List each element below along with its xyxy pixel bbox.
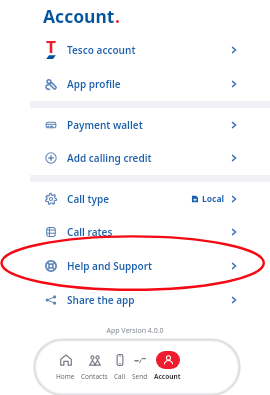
button[interactable]: Call bbox=[111, 351, 129, 381]
button[interactable]: Call rates bbox=[0, 215, 270, 249]
staticText: Send bbox=[132, 372, 148, 381]
button[interactable]: Home bbox=[53, 351, 78, 381]
staticText: Account bbox=[154, 372, 181, 381]
button[interactable]: Payment wallet bbox=[0, 108, 270, 141]
button[interactable]: Share the app bbox=[0, 283, 270, 317]
button[interactable]: Account bbox=[151, 351, 184, 381]
staticText: Call type bbox=[67, 192, 110, 206]
button[interactable]: Help and Support bbox=[0, 249, 270, 283]
button[interactable]: App profile bbox=[0, 67, 270, 101]
staticText: Call bbox=[114, 372, 126, 381]
button[interactable]: Call type bbox=[0, 182, 270, 215]
staticText: Payment wallet bbox=[67, 118, 143, 132]
button[interactable]: Add calling credit bbox=[0, 141, 270, 175]
button[interactable]: Send bbox=[129, 351, 151, 381]
staticText: Contacts bbox=[81, 372, 108, 381]
staticText: Call rates bbox=[67, 225, 113, 239]
staticText: Local bbox=[202, 193, 225, 205]
staticText: Share the app bbox=[67, 293, 135, 307]
button[interactable]: Tesco account bbox=[0, 32, 270, 67]
staticText: Account bbox=[43, 4, 115, 28]
staticText: App profile bbox=[67, 77, 121, 91]
staticText: Tesco account bbox=[67, 43, 136, 57]
staticText: App Version 4.0.0 bbox=[0, 326, 270, 336]
button[interactable]: Contacts bbox=[78, 351, 111, 381]
staticText: . bbox=[115, 4, 120, 28]
staticText: Help and Support bbox=[67, 259, 153, 273]
staticText: Add calling credit bbox=[67, 151, 152, 165]
staticText: Home bbox=[56, 372, 75, 381]
